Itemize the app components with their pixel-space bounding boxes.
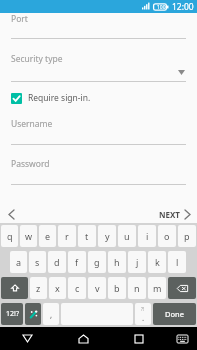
- staticText: p: [184, 230, 190, 242]
- staticText: h: [114, 256, 120, 268]
- staticText: Username: [11, 118, 53, 130]
- button[interactable]: a: [10, 251, 27, 273]
- button[interactable]: i: [138, 225, 156, 247]
- staticText: d: [54, 256, 60, 268]
- button[interactable]: j: [128, 251, 146, 273]
- staticText: v: [95, 282, 100, 294]
- button[interactable]: Home: [55, 327, 111, 350]
- button[interactable]: s: [29, 251, 46, 273]
- staticText: l: [176, 256, 179, 268]
- staticText: j: [136, 256, 139, 268]
- button[interactable]: k: [148, 251, 166, 273]
- button[interactable]: m: [148, 277, 166, 299]
- staticText: ?!: [141, 306, 145, 312]
- staticText: 12:00: [172, 1, 194, 13]
- staticText: 100: [157, 4, 166, 11]
- button[interactable]: b: [108, 277, 126, 299]
- staticText: m: [153, 282, 162, 294]
- staticText: Done: [165, 309, 184, 319]
- button[interactable]: e: [39, 225, 56, 247]
- staticText: Password: [11, 158, 50, 170]
- staticText: c: [75, 282, 80, 294]
- staticText: Port: [11, 13, 28, 24]
- button[interactable]: o: [158, 225, 176, 247]
- button[interactable]: Done: [153, 303, 196, 325]
- button[interactable]: z: [30, 277, 47, 299]
- staticText: f: [75, 256, 79, 268]
- button[interactable]: Hide keyboard: [167, 327, 197, 350]
- button[interactable]: w: [20, 225, 37, 247]
- staticText: Require sign-in.: [28, 92, 91, 104]
- button[interactable]: 12!?: [1, 303, 23, 325]
- button[interactable]: v: [88, 277, 106, 299]
- button[interactable]: q: [1, 225, 18, 247]
- button[interactable]: x: [49, 277, 66, 299]
- staticText: n: [134, 282, 140, 294]
- staticText: k: [155, 256, 160, 268]
- button[interactable]: y: [98, 225, 116, 247]
- staticText: g: [94, 256, 100, 268]
- button[interactable]: Emoji: [25, 303, 41, 325]
- button[interactable]: Port: [0, 13, 197, 24]
- button[interactable]: r: [58, 225, 76, 247]
- staticText: .: [142, 312, 145, 323]
- button[interactable]: g: [88, 251, 106, 273]
- button[interactable]: f: [68, 251, 86, 273]
- staticText: w: [25, 230, 33, 242]
- button[interactable]: d: [48, 251, 66, 273]
- button[interactable]: Recents: [111, 327, 167, 350]
- staticText: o: [164, 230, 170, 242]
- button[interactable]: Shift: [1, 277, 28, 299]
- button[interactable]: c: [68, 277, 86, 299]
- button[interactable]: Back: [0, 327, 55, 350]
- staticText: b: [114, 282, 120, 294]
- staticText: q: [7, 230, 13, 242]
- staticText: u: [124, 230, 130, 242]
- button[interactable]: n: [128, 277, 146, 299]
- staticText: t: [85, 230, 89, 242]
- button[interactable]: l: [168, 251, 186, 273]
- staticText: x: [55, 282, 60, 294]
- button[interactable]: u: [118, 225, 136, 247]
- staticText: e: [45, 230, 51, 242]
- button[interactable]: Backspace: [168, 277, 196, 299]
- staticText: z: [36, 282, 41, 294]
- button[interactable]: ?!: [135, 303, 151, 325]
- button[interactable]: NEXT: [159, 205, 190, 223]
- staticText: i: [146, 230, 149, 242]
- button[interactable]: Require sign-in.: [11, 92, 186, 104]
- staticText: a: [16, 256, 22, 268]
- button[interactable]: t: [78, 225, 96, 247]
- staticText: 12!?: [6, 309, 19, 319]
- staticText: NEXT: [159, 209, 180, 220]
- button[interactable]: Previous: [0, 205, 22, 223]
- button[interactable]: Password: [0, 158, 197, 170]
- button[interactable]: p: [178, 225, 196, 247]
- button[interactable]: h: [108, 251, 126, 273]
- button[interactable]: ,: [43, 303, 59, 325]
- staticText: Security type: [11, 53, 63, 65]
- staticText: y: [105, 230, 110, 242]
- button[interactable]: Username: [0, 118, 197, 130]
- staticText: ,: [50, 309, 53, 320]
- staticText: r: [65, 230, 69, 242]
- button[interactable]: Security type: [0, 53, 197, 65]
- staticText: s: [35, 256, 40, 268]
